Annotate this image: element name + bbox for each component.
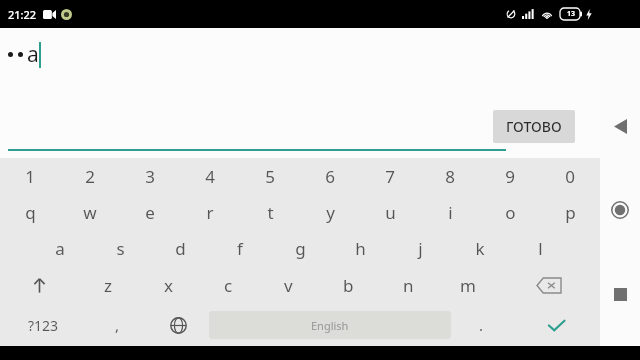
button[interactable]: 6 [300, 158, 360, 194]
button[interactable]: e [120, 194, 180, 230]
staticText: n [403, 274, 414, 297]
button[interactable]: Done [512, 304, 600, 346]
button[interactable]: t [240, 194, 300, 230]
staticText: z [104, 274, 112, 297]
staticText: 3 [145, 165, 155, 188]
staticText: y [326, 201, 335, 224]
button[interactable]: l [510, 230, 570, 266]
staticText: v [284, 274, 293, 297]
button[interactable]: 1 [0, 158, 60, 194]
button[interactable]: o [480, 194, 540, 230]
staticText: p [565, 201, 576, 224]
staticText: j [418, 237, 423, 260]
button[interactable]: 7 [360, 158, 420, 194]
staticText: c [224, 274, 233, 297]
staticText: a [27, 40, 39, 69]
staticText: 2 [85, 165, 95, 188]
staticText: , [115, 315, 120, 335]
button[interactable]: ?123 [0, 304, 87, 346]
button[interactable]: u [360, 194, 420, 230]
button[interactable]: 2 [60, 158, 120, 194]
button[interactable]: 9 [480, 158, 540, 194]
button[interactable]: h [330, 230, 390, 266]
staticText: 6 [325, 165, 335, 188]
button[interactable]: c [198, 266, 258, 304]
staticText: 8 [445, 165, 455, 188]
button[interactable]: p [540, 194, 600, 230]
staticText: ГОТОВО [506, 117, 562, 136]
staticText: 21:22 [8, 7, 37, 22]
staticText: f [237, 237, 243, 260]
staticText: d [175, 237, 186, 260]
button[interactable]: b [318, 266, 378, 304]
button[interactable]: Recents [600, 274, 640, 314]
staticText: r [206, 201, 214, 224]
staticText: o [505, 201, 516, 224]
staticText: 0 [565, 165, 575, 188]
staticText: 7 [385, 165, 395, 188]
button[interactable]: w [60, 194, 120, 230]
button[interactable]: ГОТОВО [493, 110, 575, 143]
staticText: s [116, 237, 125, 260]
staticText: English [311, 318, 349, 333]
button[interactable]: Shift [0, 266, 78, 304]
button[interactable]: i [420, 194, 480, 230]
staticText: u [385, 201, 396, 224]
staticText: x [164, 274, 173, 297]
staticText: g [295, 237, 306, 260]
staticText: . [479, 315, 484, 335]
button[interactable]: q [0, 194, 60, 230]
button[interactable]: d [150, 230, 210, 266]
staticText: 1 [25, 165, 35, 188]
staticText: 9 [505, 165, 515, 188]
button[interactable]: z [78, 266, 138, 304]
staticText: e [145, 201, 155, 224]
button[interactable]: Back [600, 106, 640, 146]
staticText: h [355, 237, 366, 260]
button[interactable]: m [438, 266, 498, 304]
staticText: w [83, 201, 97, 224]
staticText: b [343, 274, 354, 297]
staticText: i [448, 201, 453, 224]
button[interactable]: g [270, 230, 330, 266]
staticText: m [460, 274, 476, 297]
staticText: l [538, 237, 543, 260]
staticText: a [55, 237, 65, 260]
staticText: 13 [567, 9, 576, 19]
button[interactable]: k [450, 230, 510, 266]
button[interactable]: Backspace [498, 266, 600, 304]
button[interactable]: . [451, 304, 512, 346]
button[interactable]: s [90, 230, 150, 266]
button[interactable]: Home [600, 190, 640, 230]
button[interactable]: r [180, 194, 240, 230]
button[interactable]: a [30, 230, 90, 266]
button[interactable]: , [87, 304, 148, 346]
staticText: ?123 [28, 316, 59, 335]
button[interactable]: f [210, 230, 270, 266]
staticText: 5 [265, 165, 275, 188]
button[interactable]: x [138, 266, 198, 304]
button[interactable]: 8 [420, 158, 480, 194]
button[interactable]: v [258, 266, 318, 304]
staticText: 4 [205, 165, 215, 188]
button[interactable]: Space [209, 311, 451, 339]
button[interactable]: 3 [120, 158, 180, 194]
button[interactable]: Change language [148, 304, 209, 346]
staticText: k [475, 237, 485, 260]
button[interactable]: 0 [540, 158, 600, 194]
button[interactable]: n [378, 266, 438, 304]
staticText: t [267, 201, 274, 224]
staticText: q [25, 201, 36, 224]
button[interactable]: 4 [180, 158, 240, 194]
button[interactable]: y [300, 194, 360, 230]
button[interactable]: 5 [240, 158, 300, 194]
button[interactable]: j [390, 230, 450, 266]
